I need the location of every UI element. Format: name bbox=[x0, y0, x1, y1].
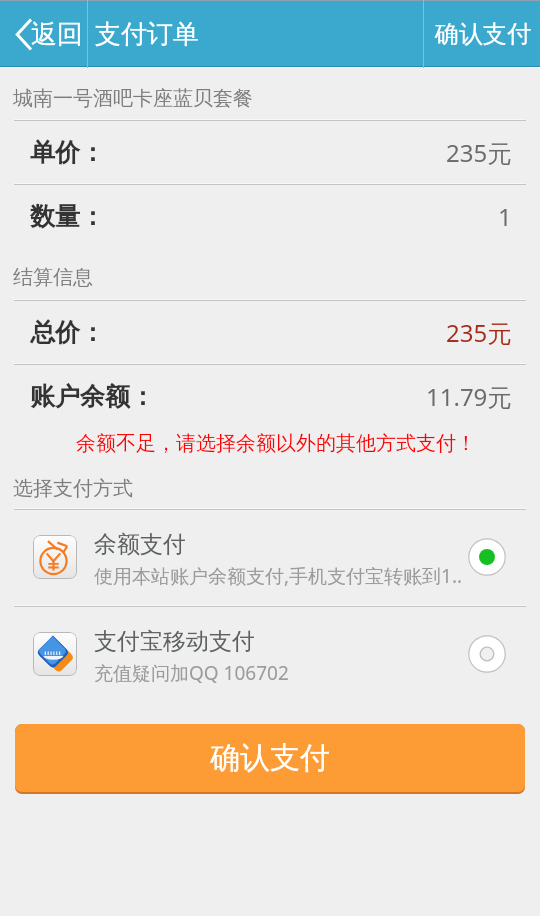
staticText: 使用本站账户余额支付,手机支付宝转账到1... bbox=[94, 563, 461, 589]
staticText: 235元 bbox=[446, 136, 512, 169]
button[interactable]: 返回 bbox=[0, 0, 87, 68]
staticText: 11.79元 bbox=[426, 380, 512, 413]
staticText: 235元 bbox=[446, 316, 512, 349]
staticText: 城南一号酒吧卡座蓝贝套餐 bbox=[13, 86, 253, 111]
button[interactable]: 总价： bbox=[0, 301, 540, 364]
staticText: 总价： bbox=[30, 317, 105, 348]
button[interactable]: 确认支付 bbox=[424, 0, 540, 68]
staticText: 确认支付 bbox=[435, 19, 531, 49]
staticText: 单价： bbox=[30, 137, 105, 168]
staticText: 结算信息 bbox=[13, 265, 93, 290]
button[interactable]: 确认支付 bbox=[15, 724, 525, 794]
staticText: 账户余额： bbox=[30, 381, 155, 412]
button[interactable]: 余额支付 bbox=[0, 510, 540, 606]
button[interactable]: 账户余额： bbox=[0, 365, 540, 428]
staticText: 返回 bbox=[31, 18, 83, 51]
staticText: 充值疑问加QQ 106702 bbox=[94, 660, 289, 686]
staticText: 确认支付 bbox=[210, 739, 330, 777]
button[interactable]: 选择支付宝移动支付 bbox=[468, 635, 506, 673]
button[interactable]: 已选择余额支付 bbox=[468, 538, 506, 576]
staticText: 余额不足，请选择余额以外的其他方式支付！ bbox=[76, 431, 476, 456]
staticText: 选择支付方式 bbox=[13, 476, 133, 501]
staticText: 1 bbox=[498, 200, 512, 233]
button[interactable]: 支付宝移动支付 bbox=[0, 607, 540, 703]
staticText: 支付宝移动支付 bbox=[94, 627, 255, 656]
staticText: 数量： bbox=[30, 201, 105, 232]
staticText: 余额支付 bbox=[94, 530, 186, 559]
button[interactable]: 数量： bbox=[0, 185, 540, 248]
button[interactable]: 单价： bbox=[0, 121, 540, 184]
staticText: 支付订单 bbox=[95, 18, 199, 51]
